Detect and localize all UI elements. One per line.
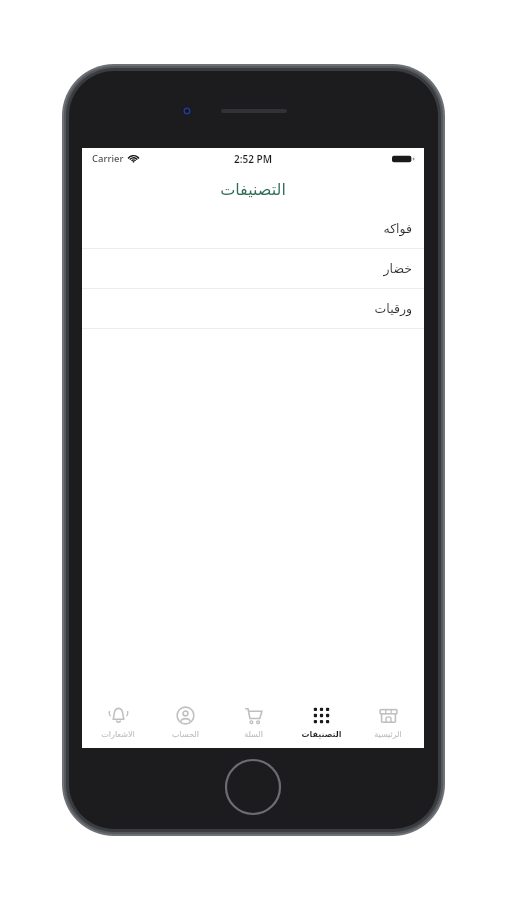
button[interactable]: الرئيسية bbox=[356, 696, 420, 748]
button[interactable]: فواكه bbox=[82, 209, 424, 249]
staticText: التصنيفات bbox=[220, 180, 286, 199]
staticText: الحساب bbox=[172, 730, 199, 739]
staticText: خضار bbox=[383, 261, 412, 276]
staticText: التصنيفات bbox=[301, 730, 342, 739]
staticText: الاشعارات bbox=[101, 730, 135, 739]
button[interactable]: الحساب bbox=[153, 696, 217, 748]
button[interactable]: خضار bbox=[82, 249, 424, 289]
button[interactable]: التصنيفات bbox=[289, 696, 353, 748]
staticText: فواكه bbox=[383, 221, 412, 236]
button[interactable]: السلة bbox=[221, 696, 285, 748]
button[interactable]: الاشعارات bbox=[86, 696, 150, 748]
button[interactable]: ورقيات bbox=[82, 289, 424, 329]
staticText: 2:52 PM bbox=[234, 152, 272, 166]
staticText: ورقيات bbox=[374, 301, 412, 316]
staticText: الرئيسية bbox=[374, 730, 402, 739]
staticText: السلة bbox=[244, 730, 263, 739]
staticText: Carrier bbox=[92, 152, 124, 165]
